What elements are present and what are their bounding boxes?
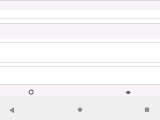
button[interactable]: Home [68, 96, 92, 120]
button[interactable]: Reload [21, 85, 41, 96]
button[interactable]: Back [0, 96, 26, 120]
button[interactable]: Reader view [118, 85, 138, 96]
button[interactable]: Recent apps [134, 96, 160, 120]
